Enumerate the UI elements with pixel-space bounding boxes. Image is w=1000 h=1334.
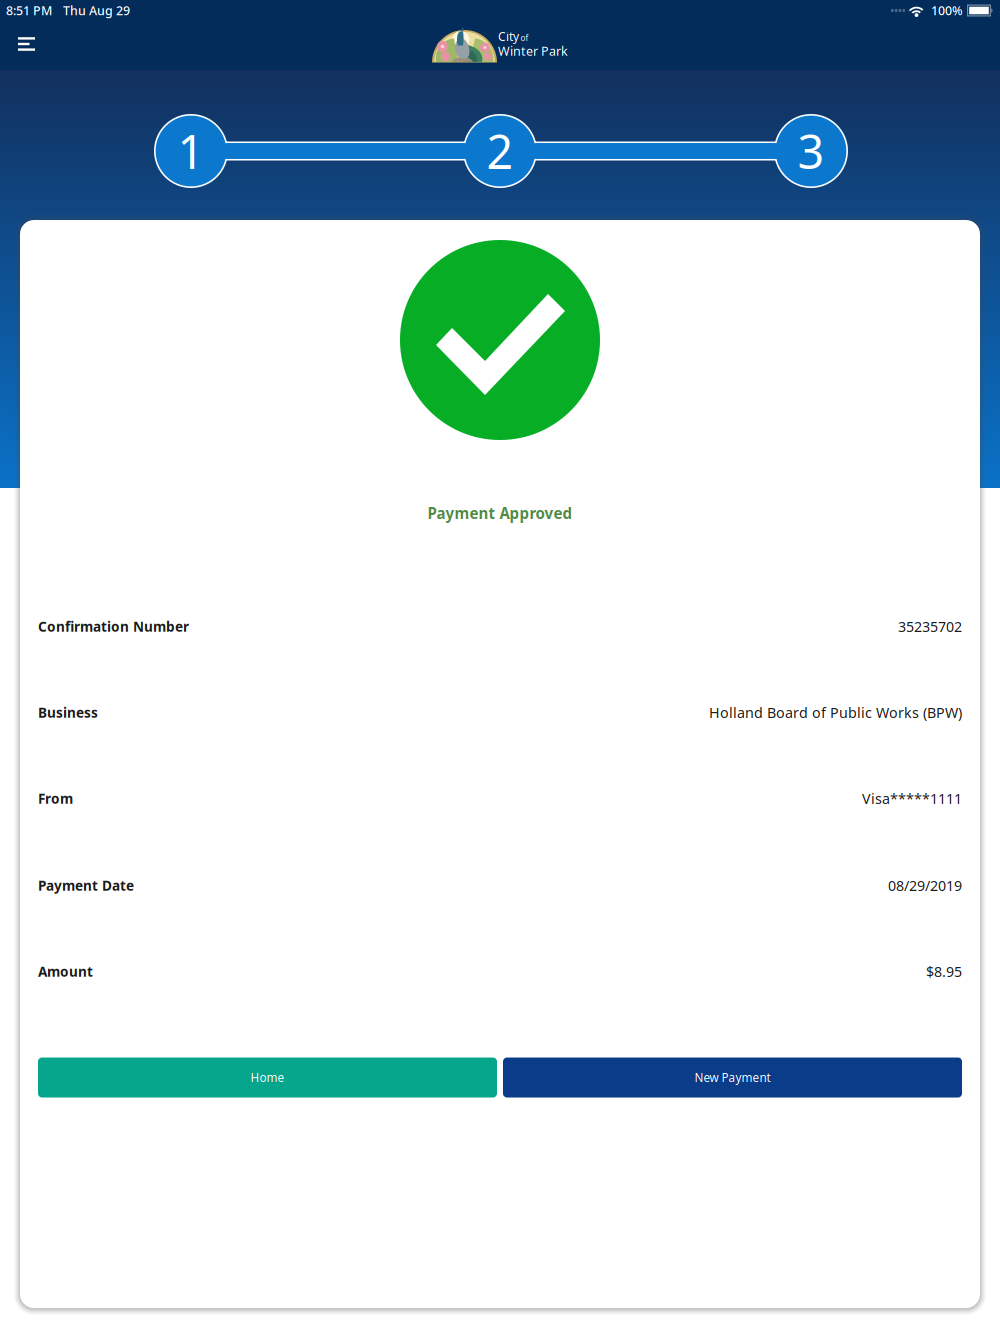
staticText: 2 [486, 119, 513, 183]
button[interactable]: New Payment [503, 1057, 962, 1097]
staticText: Thu Aug 29 [63, 2, 130, 19]
staticText: New Payment [694, 1069, 770, 1085]
staticText: 35235702 [898, 617, 962, 636]
staticText: Visa*****1111 [862, 789, 962, 808]
staticText: Confirmation Number [38, 617, 189, 636]
staticText: Home [250, 1069, 284, 1085]
staticText: $8.95 [926, 962, 962, 981]
staticText: From [38, 789, 73, 808]
staticText: Amount [38, 962, 93, 981]
button[interactable]: 2 [463, 114, 537, 188]
staticText: Payment Date [38, 876, 134, 895]
button[interactable]: 1 [154, 114, 228, 188]
staticText: Business [38, 703, 98, 722]
staticText: 1 [177, 119, 204, 183]
button[interactable]: Menu [0, 25, 53, 63]
staticText: 8:51 PM [6, 2, 52, 19]
staticText: 08/29/2019 [888, 876, 962, 895]
staticText: of [520, 32, 528, 43]
staticText: 100% [931, 2, 963, 19]
staticText: City [498, 28, 519, 44]
button[interactable]: Home [38, 1057, 497, 1097]
staticText: Winter Park [498, 42, 568, 59]
button[interactable]: 3 [774, 114, 848, 188]
staticText: Payment Approved [427, 503, 572, 523]
staticText: Holland Board of Public Works (BPW) [709, 703, 962, 722]
staticText: 3 [797, 119, 824, 183]
